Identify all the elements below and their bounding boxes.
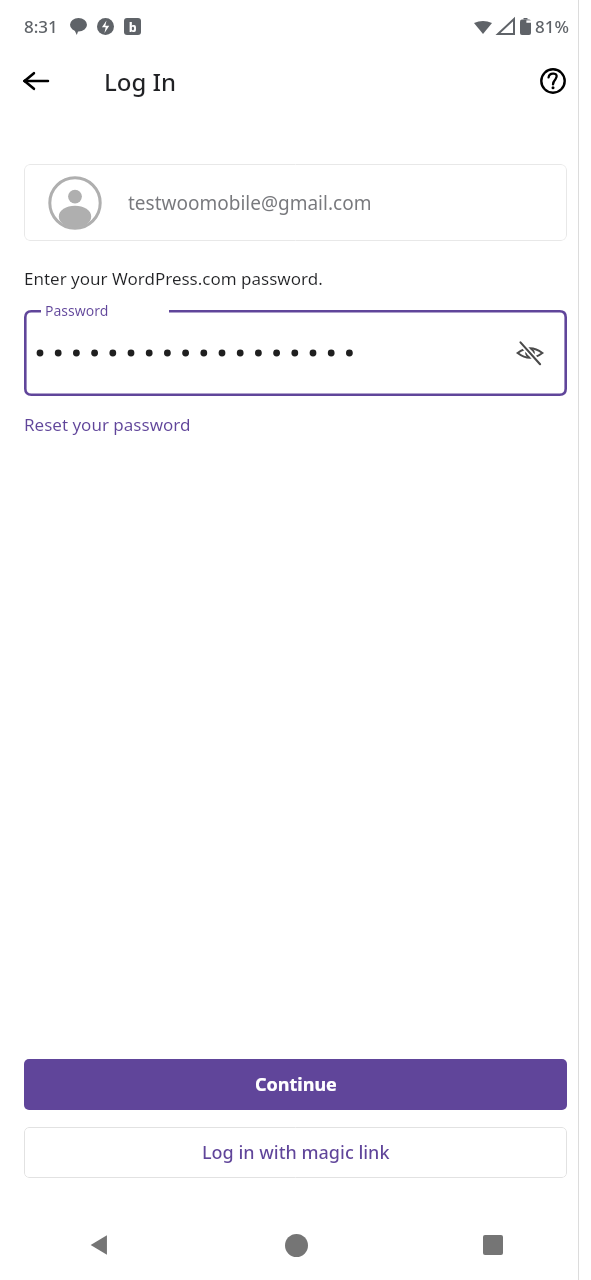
staticText: Password [45,301,109,320]
staticText: b [129,19,137,35]
button[interactable] [24,310,567,396]
staticText: testwoomobile@gmail.com [128,190,372,216]
button[interactable]: Show password [507,330,553,376]
button[interactable]: Home [267,1216,325,1274]
staticText: Log In [104,65,177,98]
staticText: 8:31 [24,15,58,38]
staticText: Continue [255,1072,337,1097]
button[interactable]: Back [70,1216,128,1274]
button[interactable]: Continue [24,1059,567,1110]
button[interactable]: Back [12,57,60,105]
button[interactable]: Help [529,57,577,105]
button[interactable]: Reset your password [24,413,191,436]
staticText: Enter your WordPress.com password. [24,267,323,290]
button[interactable]: Log in with magic link [24,1127,567,1178]
staticText: Log in with magic link [202,1140,390,1165]
button[interactable]: Recent apps [464,1216,522,1274]
staticText: 81% [535,15,569,38]
staticText: Reset your password [24,413,191,436]
button[interactable]: testwoomobile@gmail.com [24,164,567,241]
